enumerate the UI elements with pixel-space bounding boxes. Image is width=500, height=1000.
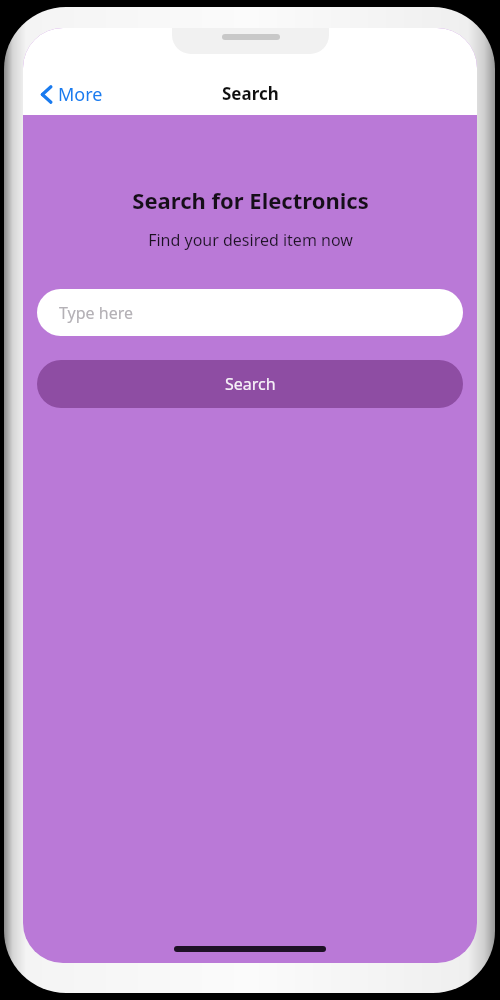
- button[interactable]: Back to More: [34, 78, 109, 111]
- staticText: Find your desired item now: [148, 229, 353, 251]
- staticText: Search: [225, 373, 276, 395]
- staticText: Type here: [59, 302, 133, 324]
- staticText: Search: [222, 82, 279, 105]
- button[interactable]: Search: [37, 360, 463, 408]
- button[interactable]: Type here: [37, 289, 463, 336]
- staticText: More: [58, 82, 103, 107]
- staticText: Search for Electronics: [132, 185, 369, 215]
